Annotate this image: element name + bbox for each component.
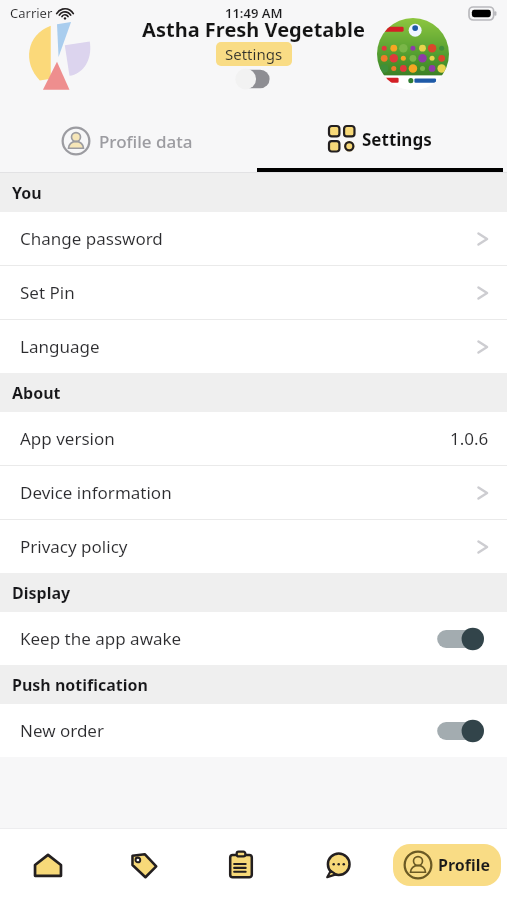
button[interactable]: App version xyxy=(0,412,507,465)
button[interactable]: Toggle New order xyxy=(435,717,489,745)
button[interactable]: Store logo xyxy=(377,18,449,90)
staticText: New order xyxy=(20,719,104,742)
button[interactable]: Offers xyxy=(96,829,192,900)
button[interactable]: Settings xyxy=(253,110,507,172)
staticText: Astha Fresh Vegetable xyxy=(142,16,365,43)
button[interactable]: Profile xyxy=(393,844,501,886)
button[interactable]: Device information xyxy=(0,466,507,519)
staticText: Profile xyxy=(438,854,491,876)
button[interactable]: Set Pin xyxy=(0,266,507,319)
staticText: Language xyxy=(20,335,100,358)
staticText: Set Pin xyxy=(20,281,75,304)
staticText: You xyxy=(12,182,42,204)
button[interactable]: Language xyxy=(0,320,507,373)
staticText: App version xyxy=(20,427,115,450)
staticText: Settings xyxy=(362,128,432,151)
button[interactable]: Settings xyxy=(216,42,292,66)
staticText: Change password xyxy=(20,227,163,250)
staticText: Device information xyxy=(20,481,172,504)
staticText: 11:49 AM xyxy=(225,4,283,22)
button[interactable]: Profile data xyxy=(0,110,253,172)
button[interactable]: Toggle settings mode xyxy=(228,66,280,92)
staticText: 1.0.6 xyxy=(450,427,489,450)
staticText: Carrier xyxy=(10,4,53,22)
staticText: Keep the app awake xyxy=(20,627,182,650)
staticText: Settings xyxy=(225,44,283,64)
button[interactable]: Home xyxy=(0,829,96,900)
button[interactable]: Privacy policy xyxy=(0,520,507,573)
button[interactable]: Keep the app awake xyxy=(0,612,507,665)
button[interactable]: Change password xyxy=(0,212,507,265)
button[interactable]: New order xyxy=(0,704,507,757)
staticText: Push notification xyxy=(12,674,148,696)
staticText: Display xyxy=(12,582,71,604)
button[interactable]: Orders xyxy=(192,829,289,900)
staticText: Privacy policy xyxy=(20,535,128,558)
button[interactable]: Chat xyxy=(289,829,386,900)
staticText: Profile data xyxy=(99,130,193,153)
button[interactable]: Toggle Keep the app awake xyxy=(435,625,489,653)
staticText: About xyxy=(12,382,61,404)
